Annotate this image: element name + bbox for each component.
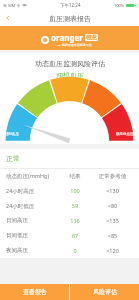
staticText: 动态血压监测风险评估 [35,59,105,68]
staticText: 风险评估 [93,288,117,296]
staticText: 日间高压 [6,217,58,224]
staticText: 正常 [6,154,20,163]
staticText: — 健康管理专家服务平台 [58,43,92,47]
button[interactable]: 风险评估 [70,284,139,300]
staticText: 日间低压 [6,232,58,239]
staticText: 血压测表报告 [49,14,91,23]
staticText: 结果 [58,173,92,180]
staticText: 查看报告 [23,288,47,296]
staticText: 24小时低压 [6,202,58,210]
staticText: 100 [58,187,92,194]
staticText: 24小时高压 [6,187,58,195]
staticText: <80 [92,202,133,209]
staticText: 116 [58,217,92,224]
staticText: 0 [58,247,92,254]
staticText: 59 [58,202,92,209]
staticText: 极高危血压 [116,132,134,136]
staticText: <85 [92,232,133,239]
staticText: 正常参考值 [92,173,133,180]
staticText: 理想血压 [56,71,84,80]
staticText: 无 SIM 卡 [3,3,22,8]
staticText: 夜间高压 [6,247,58,254]
staticText: 动态血压(mmHg) [6,172,58,180]
button[interactable]: 查看报告 [0,284,69,300]
staticText: <130 [92,187,133,194]
staticText: <135 [92,217,133,224]
staticText: <120 [92,247,133,254]
staticText: 100% [114,3,125,8]
staticText: 橙意 [86,34,97,41]
staticText: oranger [51,32,83,43]
staticText: 67 [58,232,92,239]
staticText: 理想血压 [5,132,19,136]
staticText: 下午12:24 [60,2,81,8]
button[interactable]: Back [0,10,16,26]
